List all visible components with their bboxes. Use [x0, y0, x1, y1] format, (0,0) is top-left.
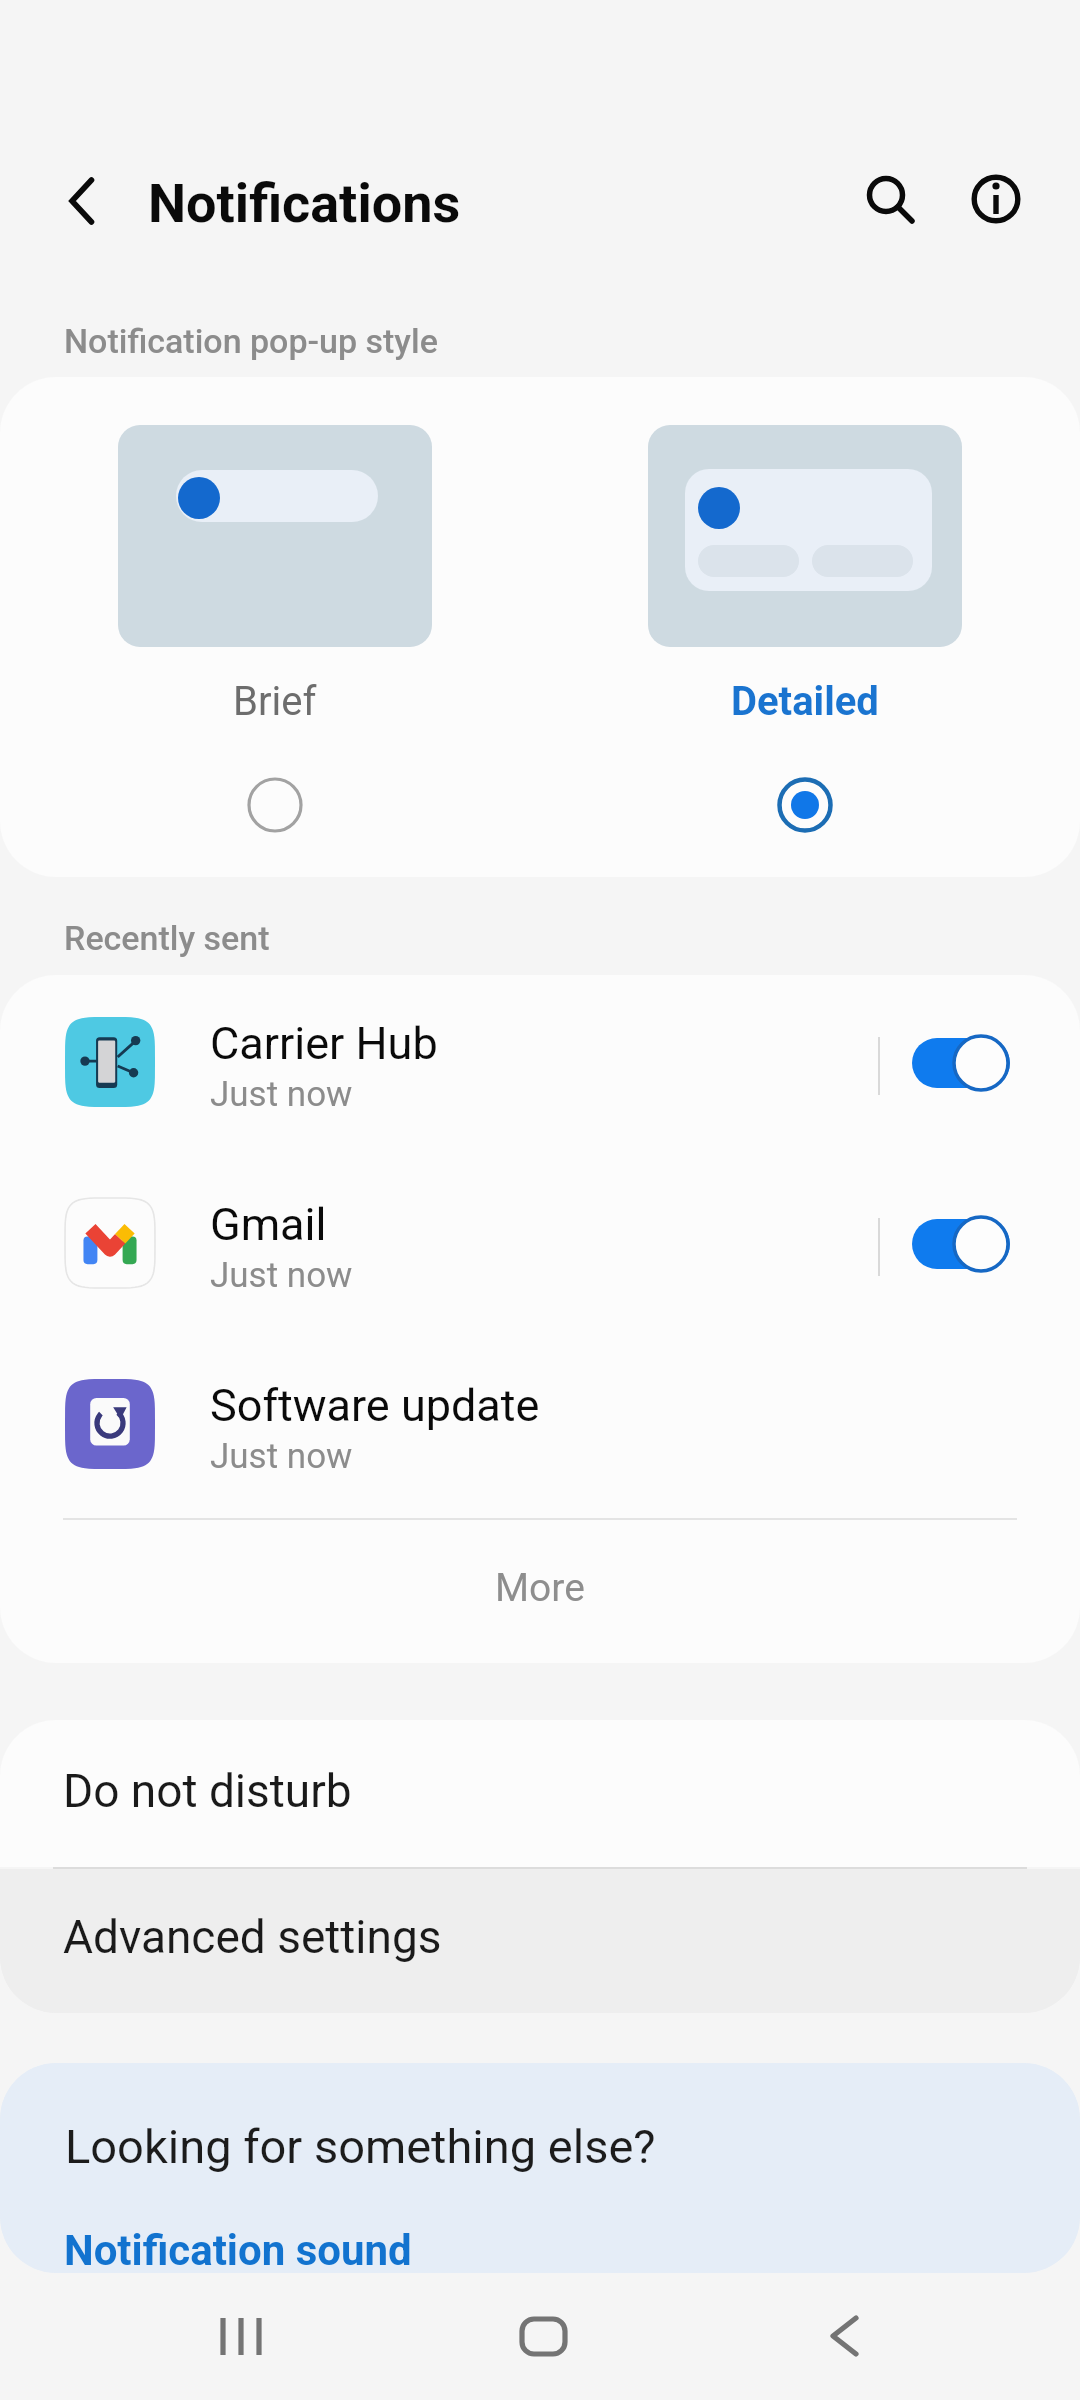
staticText: Just now: [210, 1074, 353, 1115]
staticText: More: [495, 1565, 585, 1611]
button[interactable]: Recent apps: [182, 2276, 302, 2396]
button[interactable]: Advanced settings: [0, 1869, 1080, 2013]
staticText: Carrier Hub: [210, 1017, 438, 1070]
button[interactable]: Detailed: [530, 377, 1080, 877]
staticText: Brief: [233, 678, 317, 725]
button[interactable]: Carrier Hub: [0, 975, 1080, 1156]
button[interactable]: Gmail: [0, 1156, 1080, 1337]
staticText: Advanced settings: [63, 1910, 442, 1964]
staticText: Just now: [210, 1255, 353, 1296]
staticText: Detailed: [731, 678, 879, 725]
staticText: Gmail: [210, 1198, 327, 1251]
staticText: Do not disturb: [63, 1764, 352, 1818]
button[interactable]: Toggle notifications for Carrier Hub: [880, 975, 1080, 1156]
staticText: Software update: [210, 1379, 540, 1432]
button[interactable]: Toggle notifications for Gmail: [880, 1156, 1080, 1337]
button[interactable]: More: [0, 1520, 1080, 1663]
button[interactable]: Do not disturb: [0, 1720, 1080, 1867]
button[interactable]: Information: [941, 144, 1051, 254]
staticText: Notification sound: [64, 2226, 412, 2273]
button[interactable]: Back: [783, 2276, 903, 2396]
button[interactable]: Home: [482, 2276, 602, 2396]
button[interactable]: Search: [831, 140, 941, 250]
staticText: Recently sent: [64, 918, 270, 958]
button[interactable]: Back: [16, 146, 126, 256]
button[interactable]: Notification sound: [40, 2218, 432, 2273]
button[interactable]: Software update: [0, 1337, 1080, 1518]
button[interactable]: Brief: [0, 377, 550, 877]
staticText: Notifications: [148, 172, 461, 235]
staticText: Just now: [210, 1436, 353, 1477]
staticText: Notification pop-up style: [64, 321, 438, 361]
staticText: Looking for something else?: [65, 2119, 656, 2174]
